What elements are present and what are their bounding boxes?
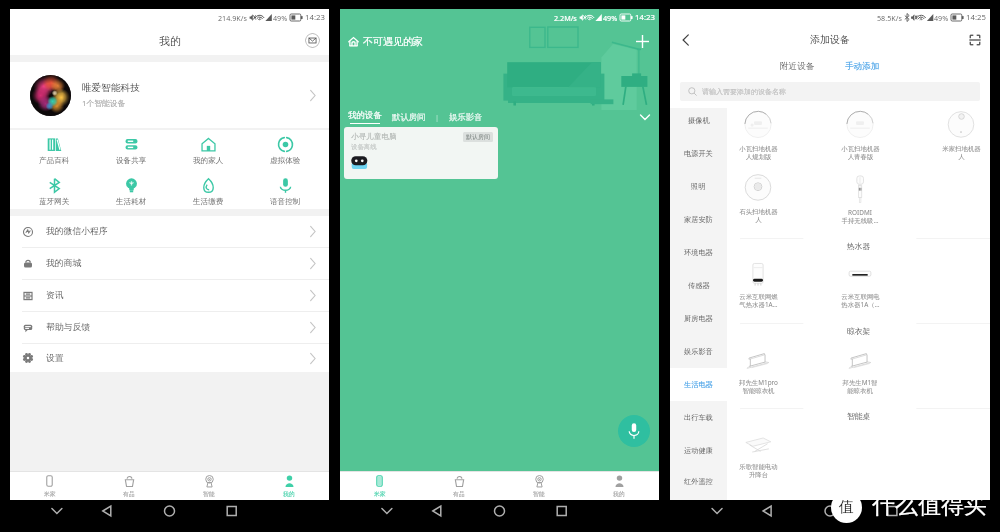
staticText: 有品 — [453, 490, 465, 497]
button[interactable]: 娱乐影音 — [670, 335, 727, 368]
staticText: 请输入需要添加的设备名称 — [702, 87, 786, 96]
staticText: 邦先生M1pro 智能晾衣机 — [739, 378, 778, 395]
button[interactable]: 米家 — [340, 472, 419, 500]
staticText: 出行车载 — [684, 413, 713, 422]
button[interactable]: 语音控制 — [252, 174, 318, 209]
staticText: 14:23 — [305, 12, 325, 23]
button[interactable]: 智能 — [499, 472, 579, 500]
staticText: 智能 — [203, 490, 215, 497]
staticText: 1个智能设备 — [82, 98, 126, 109]
button[interactable]: 有品 — [419, 472, 499, 500]
button[interactable]: 我的 — [249, 472, 329, 500]
button[interactable]: 请输入需要添加的设备名称 — [680, 82, 980, 101]
staticText: 运动健康 — [684, 446, 713, 455]
button[interactable]: 手动添加 — [845, 61, 880, 72]
button[interactable]: 蓝牙网关 — [21, 174, 87, 209]
staticText: 电源开关 — [684, 149, 713, 158]
button[interactable]: 我的商城 — [10, 248, 329, 279]
button[interactable]: 生活缴费 — [175, 174, 241, 209]
staticText: 照明 — [691, 182, 706, 191]
button[interactable]: 娱乐影音 — [449, 112, 483, 123]
staticText: 乐歌智能电动 升降台 — [739, 463, 778, 479]
button[interactable]: 产品百科 — [21, 133, 87, 168]
button[interactable]: 我的 — [579, 472, 659, 500]
staticText: 设置 — [46, 353, 307, 364]
button[interactable]: Scan QR code — [968, 33, 982, 47]
staticText: 红外遥控 — [684, 477, 713, 486]
staticText: 米家 — [374, 490, 386, 497]
button[interactable]: 小寻儿童电脑 — [344, 127, 498, 179]
staticText: ROIDMI 手持无线吸… — [841, 208, 879, 225]
button[interactable]: 电源开关 — [670, 137, 727, 170]
button[interactable]: 智能 — [169, 472, 249, 500]
button[interactable]: 家居安防 — [670, 203, 727, 236]
staticText: 热水器 — [847, 241, 871, 251]
button[interactable]: 乐歌智能电动 升降台 — [722, 427, 794, 490]
staticText: 厨房电器 — [684, 314, 713, 323]
button[interactable]: 我的微信小程序 — [10, 216, 329, 247]
button[interactable]: 红外遥控 — [670, 467, 727, 496]
staticText: 语音控制 — [270, 197, 301, 207]
button[interactable]: ROIDMI 手持无线吸… — [824, 172, 896, 235]
button[interactable]: 唯爱智能科技 — [10, 62, 329, 128]
staticText: 我的家人 — [193, 156, 224, 166]
staticText: 添加设备 — [810, 33, 850, 46]
staticText: 米家扫地机器 人 — [942, 145, 981, 161]
button[interactable]: Add device — [634, 33, 651, 50]
staticText: 小瓦扫地机器 人青春版 — [841, 145, 880, 161]
button[interactable]: 石头扫地机器 人 — [722, 172, 794, 235]
button[interactable]: 邦先生M1pro 智能晾衣机 — [722, 342, 794, 405]
button[interactable]: 我的家人 — [175, 133, 241, 168]
staticText: 家居安防 — [684, 215, 713, 224]
button[interactable]: 我的设备 — [348, 110, 382, 124]
staticText: 小瓦扫地机器 人规划版 — [739, 145, 778, 161]
staticText: 58.5K/s — [877, 13, 902, 23]
staticText: 设备共享 — [116, 156, 147, 166]
button[interactable]: Messages — [305, 33, 320, 48]
button[interactable]: 生活耗材 — [98, 174, 164, 209]
button[interactable]: 云米互联网燃 气热水器1A… — [722, 257, 794, 320]
button[interactable]: Back — [678, 33, 692, 47]
button[interactable]: 米家扫地机器 人 — [925, 109, 997, 172]
staticText: | — [435, 112, 440, 122]
staticText: 我的设备 — [348, 110, 382, 121]
staticText: 云米互联网燃 气热水器1A… — [739, 293, 778, 309]
staticText: 生活耗材 — [116, 197, 147, 207]
staticText: 我的 — [613, 490, 625, 497]
button[interactable]: Voice assistant — [618, 415, 650, 447]
button[interactable]: 照明 — [670, 170, 727, 203]
button[interactable]: 附近设备 — [780, 61, 815, 72]
staticText: 49% — [273, 13, 288, 23]
button[interactable]: 帮助与反馈 — [10, 312, 329, 343]
button[interactable]: 小瓦扫地机器 人青春版 — [824, 109, 896, 172]
staticText: 智能 — [533, 490, 545, 497]
button[interactable]: 小瓦扫地机器 人规划版 — [722, 109, 794, 172]
staticText: 14:25 — [966, 12, 986, 23]
staticText: 14:23 — [635, 12, 655, 23]
button[interactable]: 出行车载 — [670, 401, 727, 434]
staticText: 石头扫地机器 人 — [739, 208, 778, 224]
staticText: 设备离线 — [351, 143, 377, 151]
staticText: 蓝牙网关 — [39, 197, 70, 207]
button[interactable]: 环境电器 — [670, 236, 727, 269]
staticText: 传感器 — [688, 281, 710, 290]
staticText: 49% — [934, 13, 949, 23]
button[interactable]: 米家 — [10, 472, 89, 500]
button[interactable]: 资讯 — [10, 280, 329, 311]
button[interactable]: 厨房电器 — [670, 302, 727, 335]
button[interactable]: 默认房间 — [392, 112, 426, 123]
button[interactable]: 虚拟体验 — [252, 133, 318, 168]
staticText: 我的 — [159, 34, 181, 48]
button[interactable]: 运动健康 — [670, 434, 727, 467]
button[interactable]: 云米互联网电 热水器1A（… — [824, 257, 896, 320]
staticText: 生活电器 — [684, 380, 713, 389]
button[interactable]: 生活电器 — [670, 368, 727, 401]
button[interactable]: 传感器 — [670, 269, 727, 302]
staticText: 49% — [603, 13, 618, 23]
button[interactable]: 摄像机 — [670, 104, 727, 137]
button[interactable]: 邦先生M1智 能晾衣机 — [824, 342, 896, 405]
button[interactable]: 设备共享 — [98, 133, 164, 168]
button[interactable]: 设置 — [10, 344, 329, 372]
button[interactable]: Expand — [638, 110, 652, 124]
button[interactable]: 有品 — [89, 472, 169, 500]
